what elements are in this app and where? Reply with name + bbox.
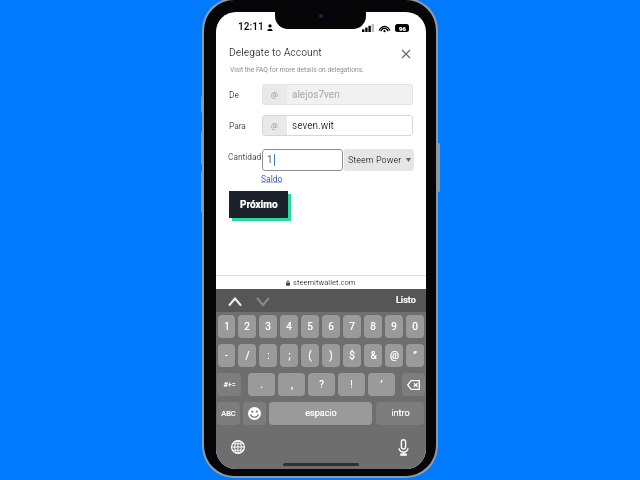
staticText: ) (329, 350, 333, 362)
staticText: 9 (391, 321, 397, 333)
button[interactable]: Backspace (402, 373, 425, 396)
button[interactable]: 6 (322, 315, 340, 338)
staticText: ; (288, 350, 291, 362)
staticText: 5 (307, 321, 313, 333)
staticText: 96 (399, 25, 406, 32)
staticText: alejos7ven (292, 89, 340, 101)
button[interactable]: 9 (385, 315, 403, 338)
button[interactable]: ( (301, 344, 319, 367)
staticText: Para (229, 121, 246, 131)
button[interactable]: ! (338, 373, 365, 396)
staticText: $ (349, 350, 355, 362)
staticText: ABC (221, 409, 236, 418)
staticText: Próximo (240, 199, 278, 211)
staticText: 6 (328, 321, 334, 333)
button[interactable]: 5 (301, 315, 319, 338)
button[interactable]: Steem Power (344, 149, 414, 171)
button[interactable]: 4 (280, 315, 298, 338)
button[interactable]: $ (343, 344, 361, 367)
staticText: 2 (244, 321, 250, 333)
button[interactable]: Dictation (393, 437, 413, 457)
staticText: 0 (412, 321, 418, 333)
button[interactable]: Previous field (226, 292, 244, 310)
staticText: 12:11 (238, 21, 264, 33)
button[interactable]: 1 (262, 149, 343, 171)
button[interactable]: 7 (343, 315, 361, 338)
button[interactable]: 3 (259, 315, 277, 338)
staticText: Delegate to Account (229, 46, 322, 58)
staticText: intro (391, 408, 410, 419)
staticText: steemitwallet.com (293, 278, 356, 287)
button[interactable]: Close (397, 45, 414, 62)
staticText: 1 (224, 321, 230, 333)
staticText: @ (271, 90, 278, 99)
staticText: Steem Power (348, 155, 402, 166)
button[interactable]: ) (322, 344, 340, 367)
staticText: @ (271, 121, 278, 130)
staticText: . (260, 379, 263, 391)
button[interactable]: / (238, 344, 256, 367)
staticText: : (267, 350, 270, 362)
staticText: #+= (223, 381, 236, 389)
staticText: ( (308, 350, 312, 362)
button[interactable]: . (248, 373, 275, 396)
button[interactable]: : (259, 344, 277, 367)
button[interactable]: - (218, 344, 235, 367)
button[interactable]: @ (262, 84, 413, 105)
staticText: espacio (305, 408, 337, 419)
button[interactable]: & (364, 344, 382, 367)
button[interactable]: intro (376, 402, 424, 425)
button[interactable]: 2 (238, 315, 256, 338)
button[interactable]: , (278, 373, 305, 396)
staticText: , (291, 379, 293, 391)
button[interactable]: 0 (406, 315, 424, 338)
staticText: De (229, 90, 239, 100)
button[interactable]: Change keyboard language (228, 437, 248, 457)
staticText: 7 (349, 321, 355, 333)
staticText: @ (390, 350, 399, 362)
staticText: - (225, 350, 228, 362)
staticText: Cantidad (228, 152, 262, 162)
button[interactable]: @ (262, 115, 413, 136)
staticText: ’ (380, 379, 383, 391)
staticText: Visit the FAQ for more details on delega… (230, 66, 364, 74)
staticText: seven.wit (292, 120, 334, 132)
staticText: ” (413, 350, 417, 362)
staticText: / (245, 350, 250, 362)
button[interactable]: Saldo (261, 174, 283, 184)
staticText: 8 (370, 321, 376, 333)
button[interactable]: 1 (218, 315, 235, 338)
button[interactable]: espacio (269, 402, 372, 425)
button[interactable]: @ (385, 344, 403, 367)
button[interactable]: ? (308, 373, 335, 396)
staticText: & (370, 350, 377, 362)
button[interactable]: #+= (217, 373, 241, 396)
button[interactable]: ” (406, 344, 424, 367)
button[interactable]: Next field (254, 292, 272, 310)
button[interactable]: ABC (217, 402, 240, 425)
staticText: ? (319, 379, 324, 391)
button[interactable]: Próximo (229, 191, 288, 218)
button[interactable]: 8 (364, 315, 382, 338)
staticText: ! (350, 379, 353, 391)
button[interactable]: Emoji keyboard (243, 402, 266, 425)
staticText: 3 (265, 321, 271, 333)
button[interactable]: ’ (368, 373, 395, 396)
button[interactable]: Listo (396, 295, 416, 306)
button[interactable]: ; (280, 344, 298, 367)
staticText: 4 (286, 321, 292, 333)
staticText: 1 (267, 154, 273, 166)
